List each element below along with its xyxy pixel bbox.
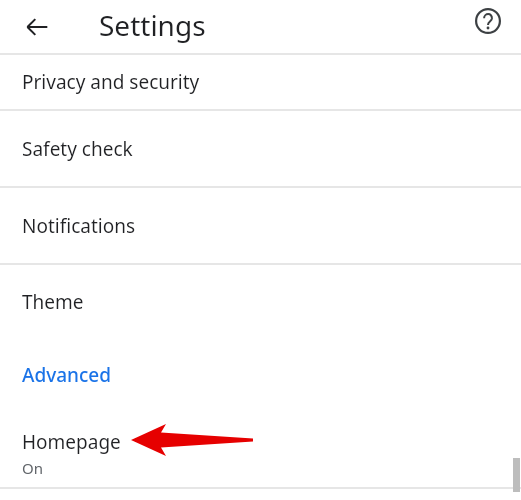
staticText: Theme [22, 289, 84, 315]
button[interactable]: Privacy and security [0, 55, 521, 109]
staticText: Safety check [22, 136, 133, 162]
button[interactable]: Homepage [0, 411, 521, 487]
staticText: On [22, 458, 43, 478]
staticText: Notifications [22, 213, 136, 239]
staticText: Advanced [22, 362, 112, 388]
staticText: Privacy and security [22, 69, 200, 95]
button[interactable]: Back [13, 3, 61, 51]
button[interactable]: Safety check [0, 111, 521, 186]
staticText: Homepage [22, 429, 121, 455]
button[interactable]: Notifications [0, 188, 521, 263]
button[interactable]: Advanced [0, 338, 521, 411]
staticText: Settings [99, 6, 206, 44]
button[interactable]: Help [464, 0, 512, 45]
button[interactable]: Theme [0, 265, 521, 338]
